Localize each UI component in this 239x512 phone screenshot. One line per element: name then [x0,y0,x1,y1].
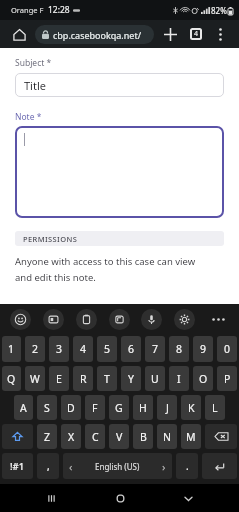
staticText: 5 [104,342,111,356]
staticText: Title [24,78,46,93]
button[interactable]: Title [15,73,224,97]
button[interactable]: 5 [97,336,117,362]
staticText: 1 [8,342,15,356]
button[interactable]: Recent apps [34,484,68,512]
button[interactable]: Q [2,366,21,391]
staticText: 4 [80,342,87,356]
button[interactable]: S [37,395,57,420]
button[interactable]: 3 [49,336,69,362]
staticText: R [80,372,87,386]
staticText: cbp.casebookqa.net/ [53,29,142,41]
button[interactable]: !#1 [2,453,33,479]
staticText: G [115,401,123,415]
staticText: H [139,401,147,415]
staticText: PERMISSIONS [23,234,78,244]
staticText: N [163,430,171,444]
button[interactable]: U [145,366,165,391]
button[interactable]: Stickers [43,309,64,330]
button[interactable]: Z [37,424,57,449]
button[interactable]: X [61,424,81,449]
button[interactable]: More keyboard options [207,308,229,330]
button[interactable]: Home [103,484,137,512]
staticText: E [56,372,62,386]
button[interactable]: V [109,424,129,449]
staticText: J [166,401,169,415]
button[interactable]: Y [121,366,141,391]
staticText: , [47,459,50,473]
button[interactable]: M [181,424,201,449]
button[interactable]: K [181,395,201,420]
button[interactable]: 2 [25,336,45,362]
button[interactable]: J [157,395,177,420]
button[interactable]: L [205,395,225,420]
staticText: B [140,430,147,444]
staticText: 12:28 [48,4,70,16]
button[interactable]: E [49,366,69,391]
button[interactable]: 7 [145,336,165,362]
button[interactable]: cbp.casebookqa.net/ [35,25,154,44]
button[interactable]: Shift [2,424,33,449]
staticText: !#1 [10,460,25,473]
staticText: D [67,401,75,415]
staticText: W [30,372,40,386]
staticText: Subject * [15,57,52,69]
button[interactable]: Clipboard [76,309,97,330]
button[interactable]: B [133,424,153,449]
staticText: Y [128,372,134,386]
button[interactable]: ‹ [63,453,172,479]
staticText: V [116,430,123,444]
button[interactable]: Settings [174,309,195,330]
staticText: Orange F [11,5,44,15]
button[interactable]: 9 [193,336,213,362]
staticText: Q [7,372,16,386]
button[interactable]: Hide keyboard [171,484,205,512]
staticText: 0 [224,342,231,356]
button[interactable]: R [73,366,93,391]
button[interactable]: , [37,453,59,479]
button[interactable]: New tab [158,22,182,46]
staticText: 7 [152,342,159,356]
button[interactable]: Text mode [109,309,130,330]
button[interactable]: I [169,366,189,391]
staticText: T [104,372,110,386]
staticText: O [199,372,208,386]
button[interactable]: O [193,366,213,391]
button[interactable]: 4 [73,336,93,362]
button[interactable]: N [157,424,177,449]
button[interactable]: D [61,395,81,420]
button[interactable]: Tabs: 4 [184,22,208,46]
staticText: U [151,372,159,386]
button[interactable]: T [97,366,117,391]
button[interactable]: Backspace [205,424,237,449]
button[interactable]: C [85,424,105,449]
button[interactable]: 1 [2,336,21,362]
button[interactable]: P [217,366,237,391]
staticText: X [68,430,75,444]
staticText: P [224,372,231,386]
button[interactable]: . [176,453,198,479]
staticText: ‹ [69,459,73,474]
button[interactable]: Home [8,23,30,45]
button[interactable]: 6 [121,336,141,362]
button[interactable]: W [25,366,45,391]
staticText: M [186,430,196,444]
button[interactable]: More options [209,23,231,45]
button[interactable]: F [85,395,105,420]
button[interactable]: G [109,395,129,420]
staticText: 2 [32,342,39,356]
staticText: F [92,401,98,415]
button[interactable]: Emoji [10,309,31,330]
staticText: 3 [56,342,63,356]
staticText: English (US) [95,461,140,472]
staticText: S [44,401,50,415]
button[interactable]: H [133,395,153,420]
button[interactable]: Enter [202,453,237,479]
button[interactable]: Voice input [141,309,162,330]
button[interactable]: 0 [217,336,237,362]
button[interactable]: 8 [169,336,189,362]
staticText: Note * [15,111,42,123]
button[interactable] [15,126,224,218]
button[interactable]: A [14,395,33,420]
staticText: 4 [194,29,199,39]
staticText: 8 [176,342,183,356]
